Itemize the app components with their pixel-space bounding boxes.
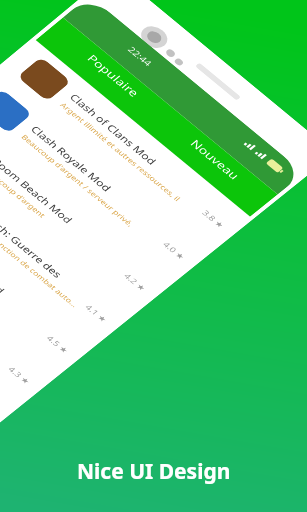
button[interactable]: Castle Clash: Guerre des Royaumes - Ba..… <box>0 136 133 342</box>
staticText: Clash Royale Mod <box>28 123 114 194</box>
staticText: Clash of Clans Mod <box>67 91 160 167</box>
staticText: Nice UI Design <box>77 457 231 486</box>
button[interactable]: Populaire <box>84 52 143 100</box>
staticText: 4.0 ★ <box>161 240 188 261</box>
button[interactable]: Clash of Clans Mod <box>0 40 250 248</box>
staticText: Populaire <box>84 52 143 100</box>
button[interactable]: Kick the Buddy Mod <box>0 168 94 373</box>
button[interactable]: Pizza Deliv... <box>0 200 56 404</box>
button[interactable]: Clash Royale Mod <box>0 72 211 280</box>
staticText: Beaucoup d'argent / serveur privé, serve… <box>19 132 158 246</box>
staticText: 3.8 ★ <box>200 208 227 230</box>
staticText: 4.3 ★ <box>6 364 33 386</box>
staticText: Castle Clash: Guerre des Royaumes - Ba..… <box>0 187 92 302</box>
staticText: 22:44 <box>125 44 155 69</box>
staticText: Boom Beach Mod <box>0 155 75 226</box>
staticText: 4.2 ★ <box>122 271 149 293</box>
button[interactable]: Nouveau <box>187 137 243 182</box>
staticText: Beaucoup d'argent <box>0 164 48 219</box>
staticText: 4.5 ★ <box>45 333 71 355</box>
staticText: Nouveau <box>187 137 243 182</box>
staticText: 4.1 ★ <box>83 302 110 324</box>
staticText: Kick the Buddy Mod <box>0 218 8 296</box>
staticText: Argent illimité (fonction de combat auto… <box>0 196 80 309</box>
button[interactable]: Boom Beach Mod <box>0 104 172 311</box>
staticText: Argent illimité et autres ressources, il… <box>58 100 197 215</box>
